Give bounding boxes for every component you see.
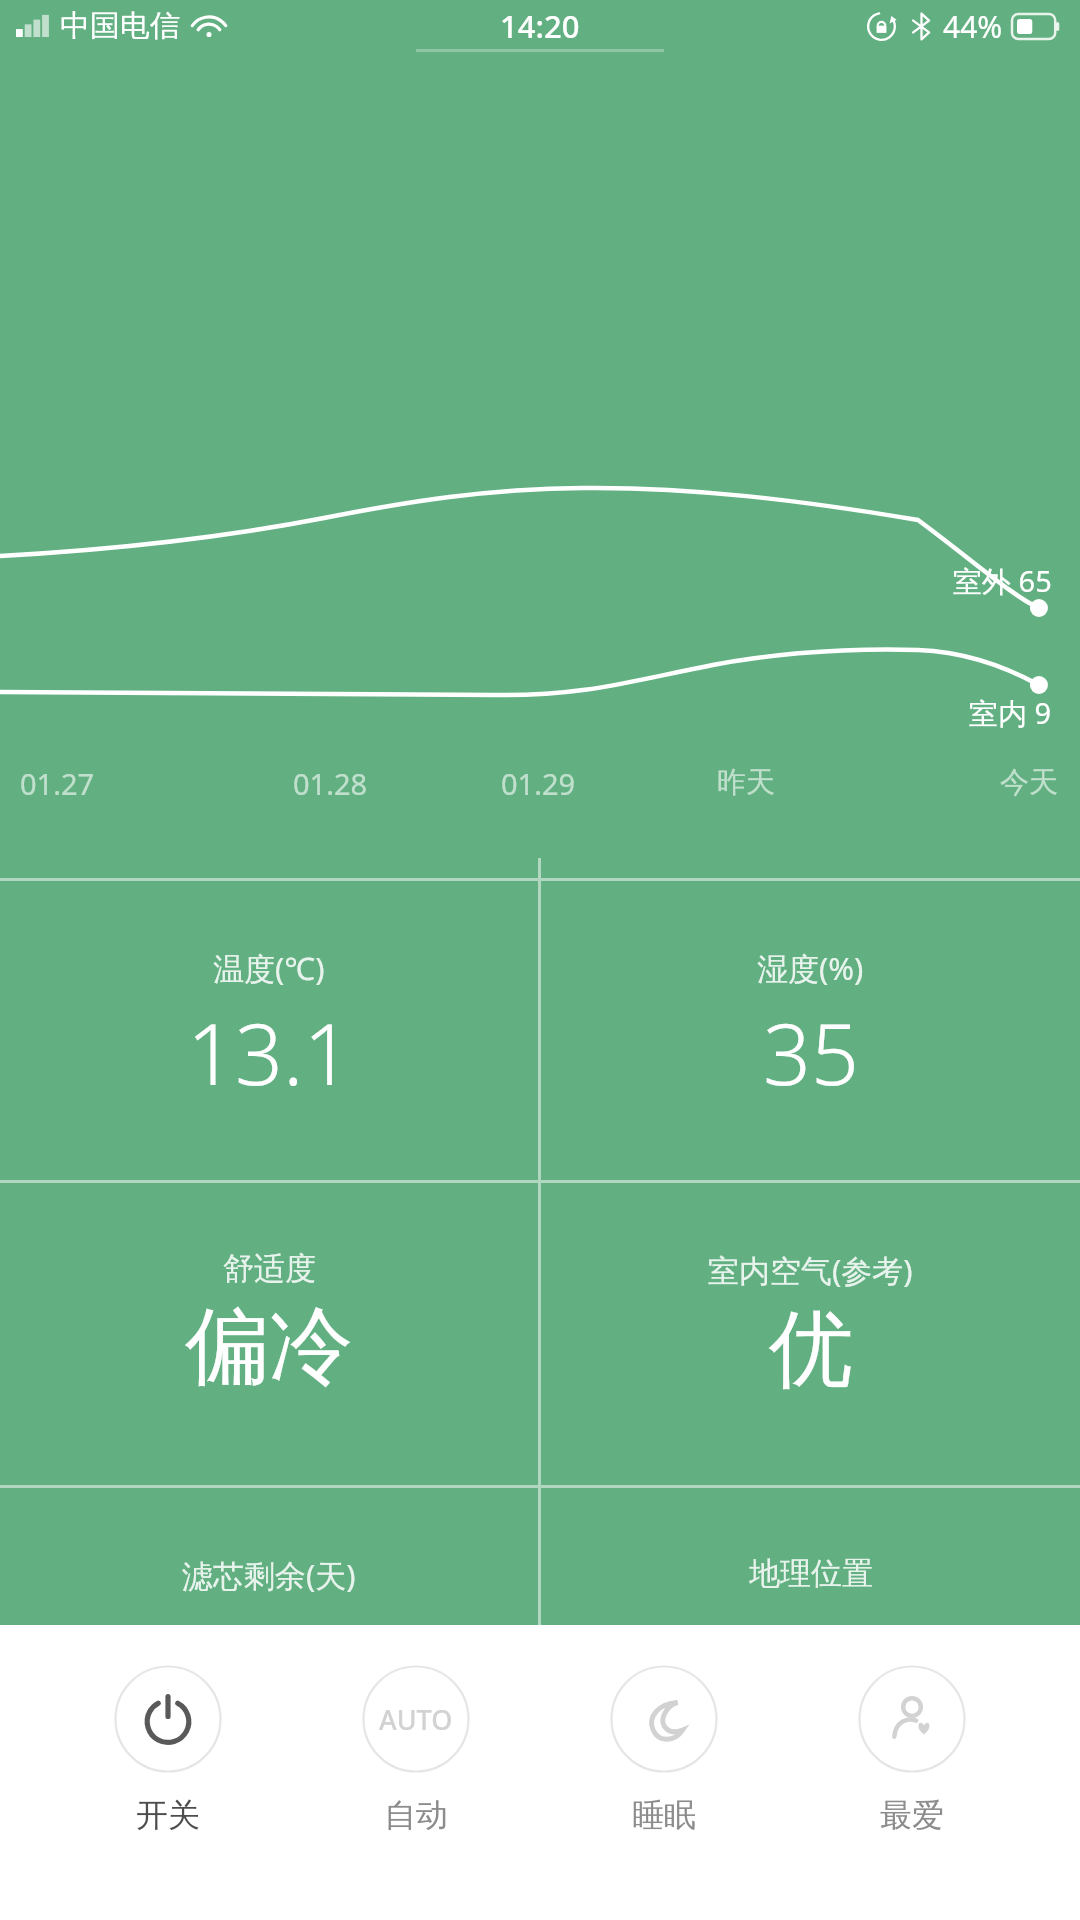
staticText: 地理位置 bbox=[749, 1554, 873, 1593]
staticText: 偏冷 bbox=[185, 1294, 353, 1400]
staticText: 44% bbox=[943, 6, 1003, 47]
button[interactable]: 温度(℃) bbox=[0, 881, 538, 1180]
staticText: 14:20 bbox=[500, 5, 580, 47]
staticText: 湿度(%) bbox=[757, 947, 864, 989]
staticText: 滤芯剩余(天) bbox=[182, 1554, 356, 1596]
button[interactable]: Auto bbox=[336, 1665, 496, 1835]
button[interactable]: 室内空气(参考) bbox=[541, 1183, 1080, 1485]
staticText: 舒适度 bbox=[223, 1249, 316, 1288]
staticText: 室内 9 bbox=[969, 693, 1052, 733]
button[interactable]: Sleep bbox=[584, 1665, 744, 1835]
staticText: 01.28 bbox=[293, 764, 368, 803]
staticText: 35 bbox=[763, 995, 859, 1109]
button[interactable]: Favorite bbox=[832, 1665, 992, 1835]
staticText: 睡眠 bbox=[632, 1795, 696, 1835]
staticText: 温度(℃) bbox=[213, 947, 325, 989]
staticText: 今天 bbox=[1000, 764, 1058, 801]
button[interactable]: 滤芯剩余(天) bbox=[0, 1488, 538, 1625]
button[interactable]: 舒适度 bbox=[0, 1183, 538, 1485]
staticText: 优 bbox=[769, 1297, 853, 1403]
button[interactable]: 地理位置 bbox=[541, 1488, 1080, 1625]
button[interactable]: 湿度(%) bbox=[541, 881, 1080, 1180]
staticText: 室内空气(参考) bbox=[708, 1249, 913, 1291]
staticText: 开关 bbox=[136, 1795, 200, 1835]
staticText: 自动 bbox=[384, 1795, 448, 1835]
staticText: 中国电信 bbox=[60, 7, 180, 45]
staticText: AUTO bbox=[379, 1701, 453, 1738]
staticText: 昨天 bbox=[717, 764, 775, 801]
staticText: 13.1 bbox=[187, 995, 352, 1109]
staticText: 01.29 bbox=[501, 764, 576, 803]
button[interactable]: Power bbox=[88, 1665, 248, 1835]
staticText: 室外 65 bbox=[953, 561, 1052, 601]
staticText: 最爱 bbox=[880, 1795, 944, 1835]
staticText: 01.27 bbox=[20, 764, 95, 803]
